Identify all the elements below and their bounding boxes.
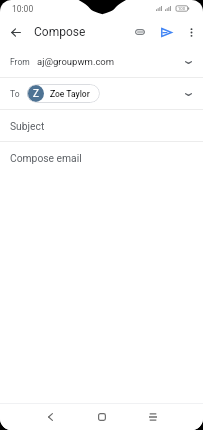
staticText: Subject <box>10 120 45 132</box>
staticText: 10:00 <box>12 4 34 14</box>
button[interactable]: Attach file <box>127 19 153 45</box>
staticText: Zoe Taylor <box>50 89 90 99</box>
button[interactable]: Back <box>25 404 76 430</box>
button[interactable]: Expand recipients <box>178 51 199 72</box>
staticText: From <box>10 57 37 67</box>
button[interactable]: Recent apps <box>127 404 178 430</box>
staticText: Z <box>33 88 39 100</box>
button[interactable]: Subject <box>0 110 203 141</box>
button[interactable]: To <box>0 78 203 109</box>
button[interactable]: Expand recipients <box>178 83 199 104</box>
staticText: Compose email <box>10 152 82 164</box>
staticText: 100 <box>178 6 186 11</box>
button[interactable]: Send <box>153 19 180 46</box>
button[interactable]: From <box>0 46 203 77</box>
button[interactable]: Compose email <box>0 142 203 173</box>
staticText: To <box>10 89 27 99</box>
button[interactable]: Z <box>27 84 100 103</box>
button[interactable]: Back <box>3 19 29 45</box>
staticText: aj@groupwm.com <box>37 56 115 67</box>
staticText: Compose <box>34 25 86 39</box>
button[interactable]: Home <box>76 404 127 430</box>
button[interactable]: More options <box>180 21 202 43</box>
